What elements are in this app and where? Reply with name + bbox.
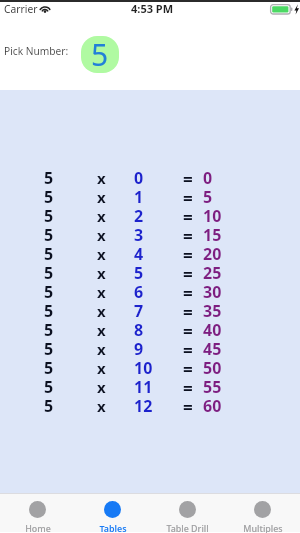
staticText: = [183, 320, 193, 339]
staticText: 0 [203, 167, 213, 186]
staticText: 15 [203, 224, 222, 243]
staticText: = [183, 263, 193, 282]
staticText: = [183, 168, 193, 187]
staticText: 5 [44, 300, 54, 319]
button[interactable]: Home [0, 493, 75, 532]
staticText: 0 [134, 167, 144, 186]
button[interactable]: Multiples [225, 493, 300, 532]
staticText: 4 [134, 243, 144, 262]
staticText: x [97, 263, 106, 282]
staticText: Home [25, 522, 51, 533]
staticText: 5 [44, 224, 54, 243]
staticText: 5 [44, 262, 54, 281]
staticText: 5 [44, 338, 54, 357]
staticText: 5 [44, 395, 54, 414]
staticText: 5 [44, 376, 54, 395]
staticText: x [97, 244, 106, 263]
staticText: = [183, 377, 193, 396]
staticText: 7 [134, 300, 144, 319]
staticText: 5 [44, 205, 54, 224]
staticText: 60 [203, 395, 222, 414]
staticText: 5 [134, 262, 144, 281]
staticText: 5 [44, 319, 54, 338]
staticText: Carrier [4, 2, 38, 16]
staticText: = [183, 244, 193, 263]
staticText: 5 [91, 36, 109, 71]
staticText: 35 [203, 300, 222, 319]
staticText: 3 [134, 224, 144, 243]
staticText: = [183, 358, 193, 377]
staticText: Table Drill [166, 522, 209, 533]
staticText: x [97, 282, 106, 301]
staticText: 55 [203, 376, 222, 395]
staticText: 5 [44, 243, 54, 262]
staticText: 5 [203, 186, 213, 205]
staticText: x [97, 168, 106, 187]
staticText: 6 [134, 281, 144, 300]
staticText: x [97, 225, 106, 244]
staticText: x [97, 396, 106, 415]
staticText: x [97, 301, 106, 320]
button[interactable]: Tables [75, 493, 150, 532]
staticText: = [183, 301, 193, 320]
staticText: 12 [134, 395, 153, 414]
staticText: 10 [203, 205, 222, 224]
staticText: 5 [44, 186, 54, 205]
staticText: 5 [44, 281, 54, 300]
staticText: = [183, 396, 193, 415]
staticText: 5 [44, 167, 54, 186]
staticText: = [183, 206, 193, 225]
staticText: x [97, 358, 106, 377]
staticText: 5 [44, 357, 54, 376]
staticText: Pick Number: [4, 44, 69, 58]
staticText: 50 [203, 357, 222, 376]
staticText: = [183, 339, 193, 358]
staticText: = [183, 187, 193, 206]
button[interactable]: 5 [81, 36, 119, 73]
staticText: Tables [99, 522, 127, 533]
staticText: 30 [203, 281, 222, 300]
staticText: Multiples [243, 522, 283, 533]
button[interactable]: Table Drill [150, 493, 225, 532]
staticText: 45 [203, 338, 222, 357]
staticText: x [97, 377, 106, 396]
staticText: 2 [134, 205, 144, 224]
staticText: x [97, 339, 106, 358]
staticText: x [97, 206, 106, 225]
staticText: 11 [134, 376, 153, 395]
staticText: = [183, 282, 193, 301]
staticText: = [183, 225, 193, 244]
staticText: 9 [134, 338, 144, 357]
staticText: 40 [203, 319, 222, 338]
staticText: 25 [203, 262, 222, 281]
staticText: 10 [134, 357, 153, 376]
staticText: x [97, 320, 106, 339]
staticText: 20 [203, 243, 222, 262]
staticText: 4:53 PM [131, 1, 174, 16]
staticText: 1 [134, 186, 144, 205]
staticText: 8 [134, 319, 144, 338]
staticText: x [97, 187, 106, 206]
